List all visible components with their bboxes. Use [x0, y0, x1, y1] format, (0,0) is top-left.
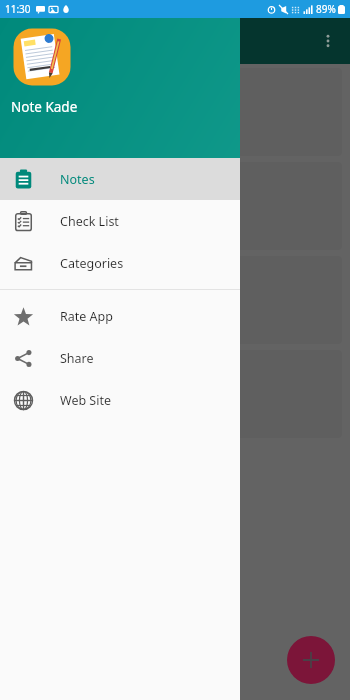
staticText: Share [60, 350, 94, 367]
staticText: Note Kade [11, 98, 78, 116]
button[interactable]: Rate App [0, 295, 240, 337]
button[interactable]: Web Site [0, 379, 240, 421]
button[interactable]: Notes [0, 158, 240, 200]
staticText: Notes [60, 171, 95, 188]
staticText: Check List [60, 213, 119, 230]
staticText: Rate App [60, 308, 113, 325]
button[interactable] [8, 350, 342, 438]
button[interactable]: Share [0, 337, 240, 379]
button[interactable]: Categories [0, 242, 240, 284]
staticText: 11:30 [5, 2, 31, 16]
button[interactable]: Check List [0, 200, 240, 242]
button[interactable]: Add note [287, 636, 335, 684]
staticText: Categories [60, 255, 124, 272]
staticText: 89% [316, 2, 336, 16]
button[interactable] [8, 256, 342, 344]
button[interactable] [8, 162, 342, 250]
button[interactable] [8, 68, 342, 156]
button[interactable]: More options [311, 24, 345, 58]
staticText: Web Site [60, 392, 112, 409]
